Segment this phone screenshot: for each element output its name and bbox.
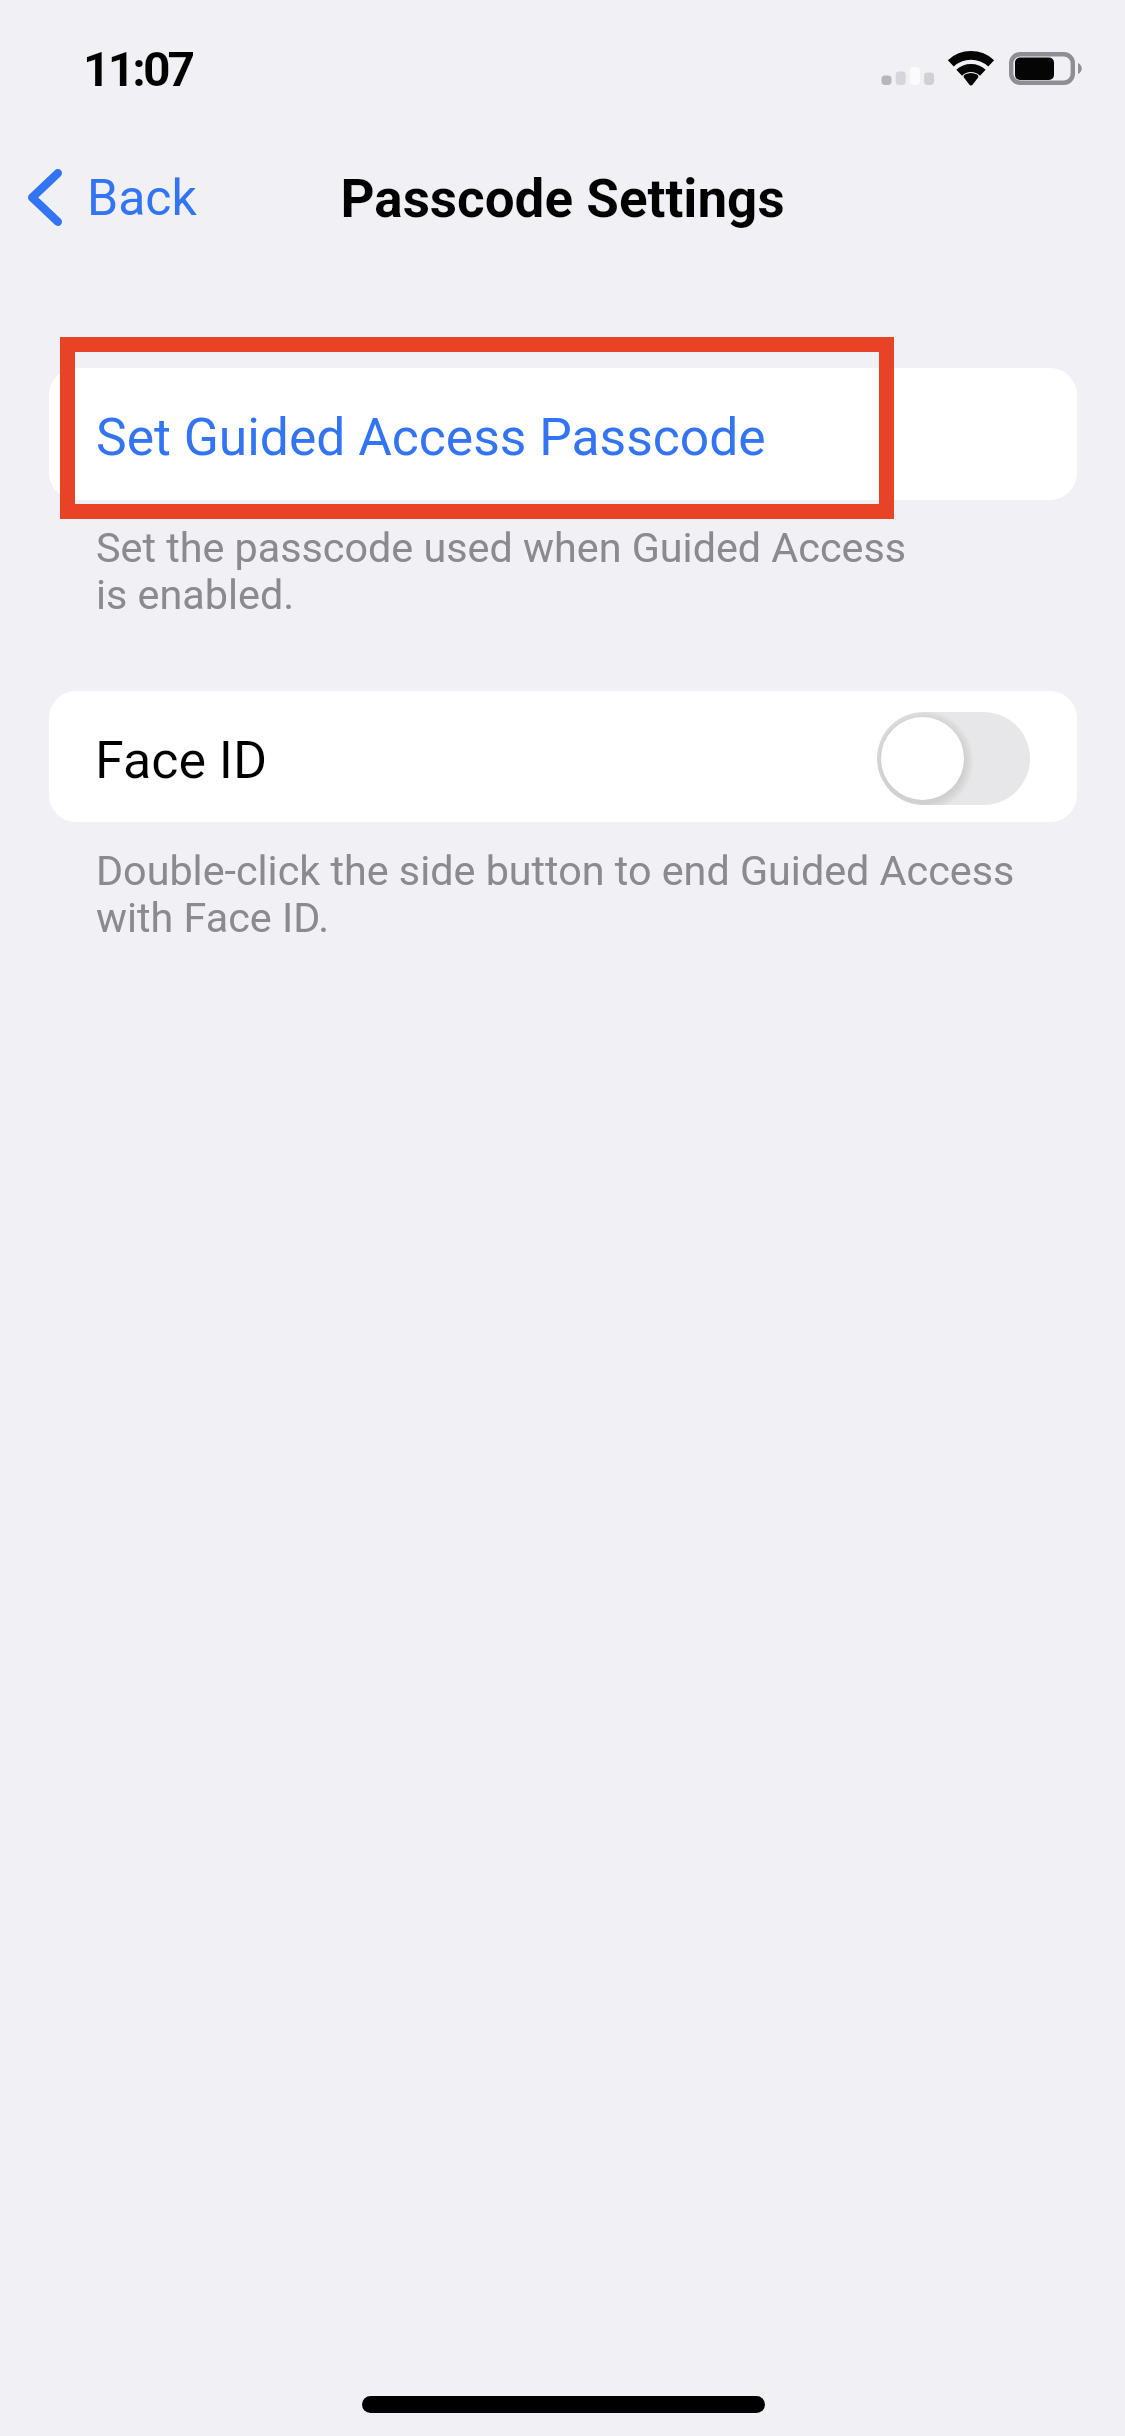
button[interactable]: Face ID toggle (877, 712, 1030, 805)
button[interactable]: Face ID (49, 691, 1077, 822)
other: Status icons (875, 40, 1090, 100)
staticText: Set the passcode used when Guided Access… (96, 524, 907, 619)
staticText: Back (87, 169, 197, 228)
button[interactable]: Set Guided Access Passcode (49, 368, 1077, 500)
button[interactable]: Back (14, 152, 214, 244)
staticText: Face ID (95, 730, 268, 791)
staticText: Double-click the side button to end Guid… (96, 847, 1015, 942)
staticText: Passcode Settings (0, 168, 1125, 230)
staticText: 11:07 (83, 41, 193, 97)
staticText: Set Guided Access Passcode (96, 407, 766, 467)
